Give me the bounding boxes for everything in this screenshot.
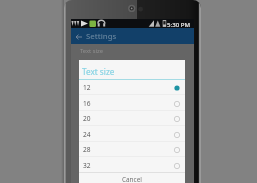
button[interactable]: 32 [79, 158, 185, 173]
button[interactable]: Back [71, 28, 194, 44]
button[interactable]: 28 [79, 142, 185, 157]
staticText: Text size [80, 47, 103, 55]
staticText: 12 [83, 83, 91, 92]
staticText: 28 [83, 145, 91, 154]
staticText: Settings [86, 31, 117, 42]
staticText: 20 [83, 114, 91, 123]
button[interactable]: Cancel [79, 173, 185, 183]
button[interactable]: Back [75, 33, 83, 41]
staticText: Cancel [122, 175, 142, 183]
button[interactable]: 16 [79, 96, 185, 111]
staticText: Text size [82, 66, 115, 77]
staticText: 32 [83, 161, 91, 170]
button[interactable]: 24 [79, 127, 185, 142]
staticText: 24 [83, 130, 91, 139]
staticText: 16 [83, 99, 91, 108]
staticText: 5:30 PM [167, 20, 191, 28]
button[interactable]: 20 [79, 111, 185, 126]
button[interactable]: 12 [79, 80, 185, 95]
